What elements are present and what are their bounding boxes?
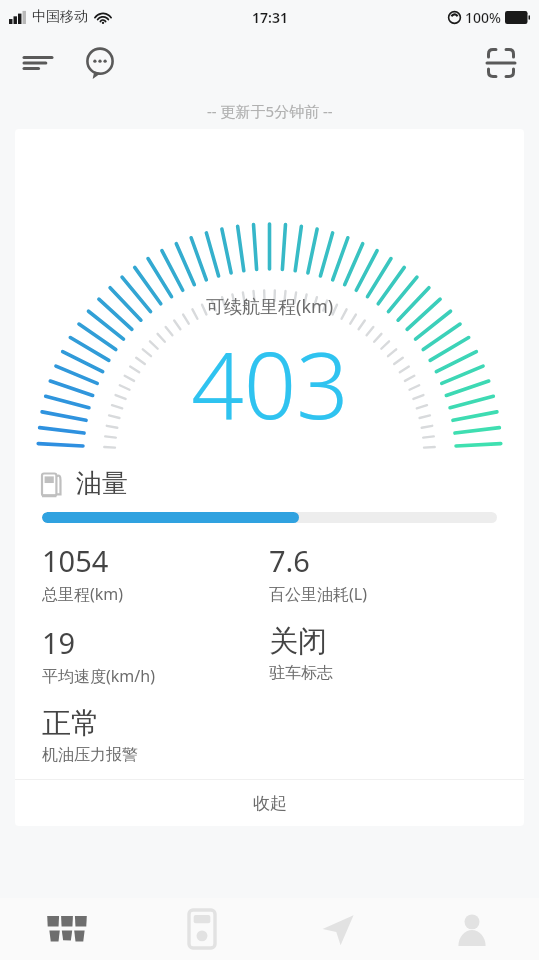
staticText: 百公里油耗(L) [269,583,367,605]
staticText: 403 [191,321,349,446]
staticText: 正常 [42,705,100,742]
staticText: 机油压力报警 [42,745,138,765]
staticText: 1054 [42,541,109,580]
staticText: 油量 [76,467,128,500]
staticText: 平均速度(km/h) [42,665,155,687]
button[interactable]: Messages [76,39,124,87]
button[interactable]: Scan [477,39,525,87]
staticText: 中国移动 [32,8,88,26]
staticText: 19 [42,623,76,662]
button[interactable]: 收起 [15,780,524,826]
staticText: 驻车标志 [269,663,333,683]
button[interactable]: Device [134,898,269,960]
staticText: 可续航里程(km) [206,294,334,319]
staticText: 关闭 [269,623,327,660]
button[interactable]: Menu [14,39,62,87]
button[interactable]: Vehicle [0,898,134,960]
staticText: 100% [465,8,501,27]
staticText: 收起 [253,793,287,814]
staticText: 17:31 [252,8,288,27]
staticText: -- 更新于5分钟前 -- [207,101,333,121]
staticText: 7.6 [269,541,310,580]
button[interactable]: Profile [404,898,539,960]
button[interactable]: Navigate [269,898,404,960]
staticText: 总里程(km) [42,583,124,605]
